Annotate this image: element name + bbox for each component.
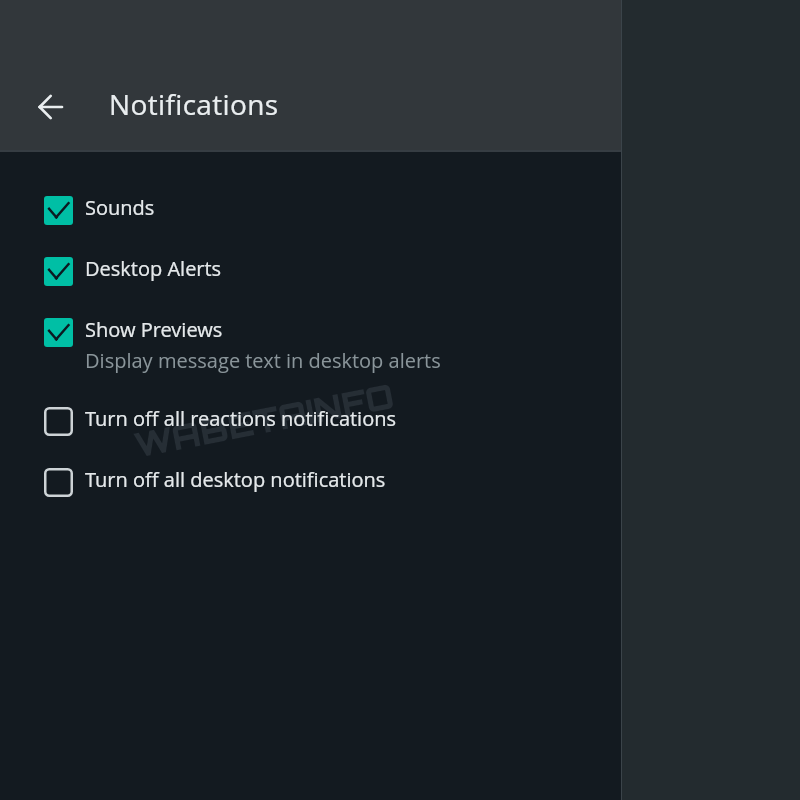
staticText: Turn off all desktop notifications	[85, 466, 386, 493]
button[interactable]: Sounds	[0, 152, 621, 223]
button[interactable]: Turn off all desktop notifications	[0, 434, 621, 495]
staticText: Turn off all reactions notifications	[85, 405, 397, 432]
staticText: WABETAINFO	[130, 374, 398, 467]
staticText: Desktop Alerts	[85, 255, 222, 282]
button[interactable]: Turn off all reactions notifications	[0, 374, 621, 434]
staticText: Sounds	[85, 194, 155, 221]
button[interactable]: Back	[38, 95, 62, 119]
button[interactable]: Show Previews	[0, 284, 621, 374]
staticText: Display message text in desktop alerts	[85, 347, 441, 374]
staticText: Notifications	[109, 85, 279, 123]
button[interactable]: Desktop Alerts	[0, 223, 621, 284]
staticText: Show Previews	[85, 316, 223, 343]
